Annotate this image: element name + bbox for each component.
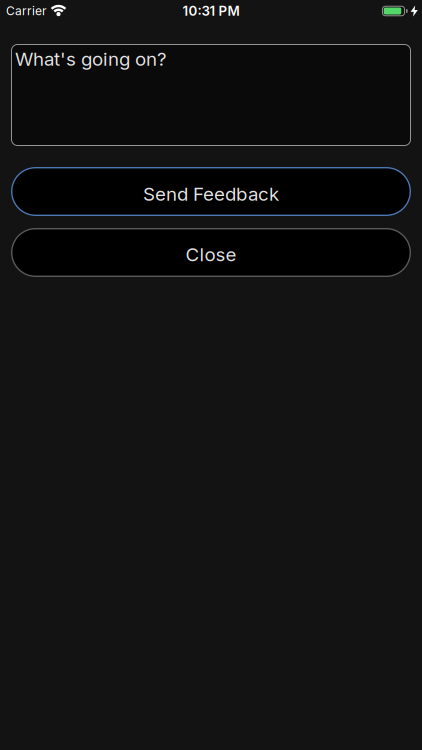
staticText: What's going on? xyxy=(15,48,167,70)
staticText: Carrier xyxy=(6,4,47,18)
staticText: 10:31 PM xyxy=(182,3,239,19)
button[interactable]: What's going on? xyxy=(11,44,411,146)
button[interactable]: Send Feedback xyxy=(11,167,411,216)
button[interactable]: Close xyxy=(11,228,411,277)
staticText: Send Feedback xyxy=(143,183,279,205)
staticText: Close xyxy=(185,243,236,265)
